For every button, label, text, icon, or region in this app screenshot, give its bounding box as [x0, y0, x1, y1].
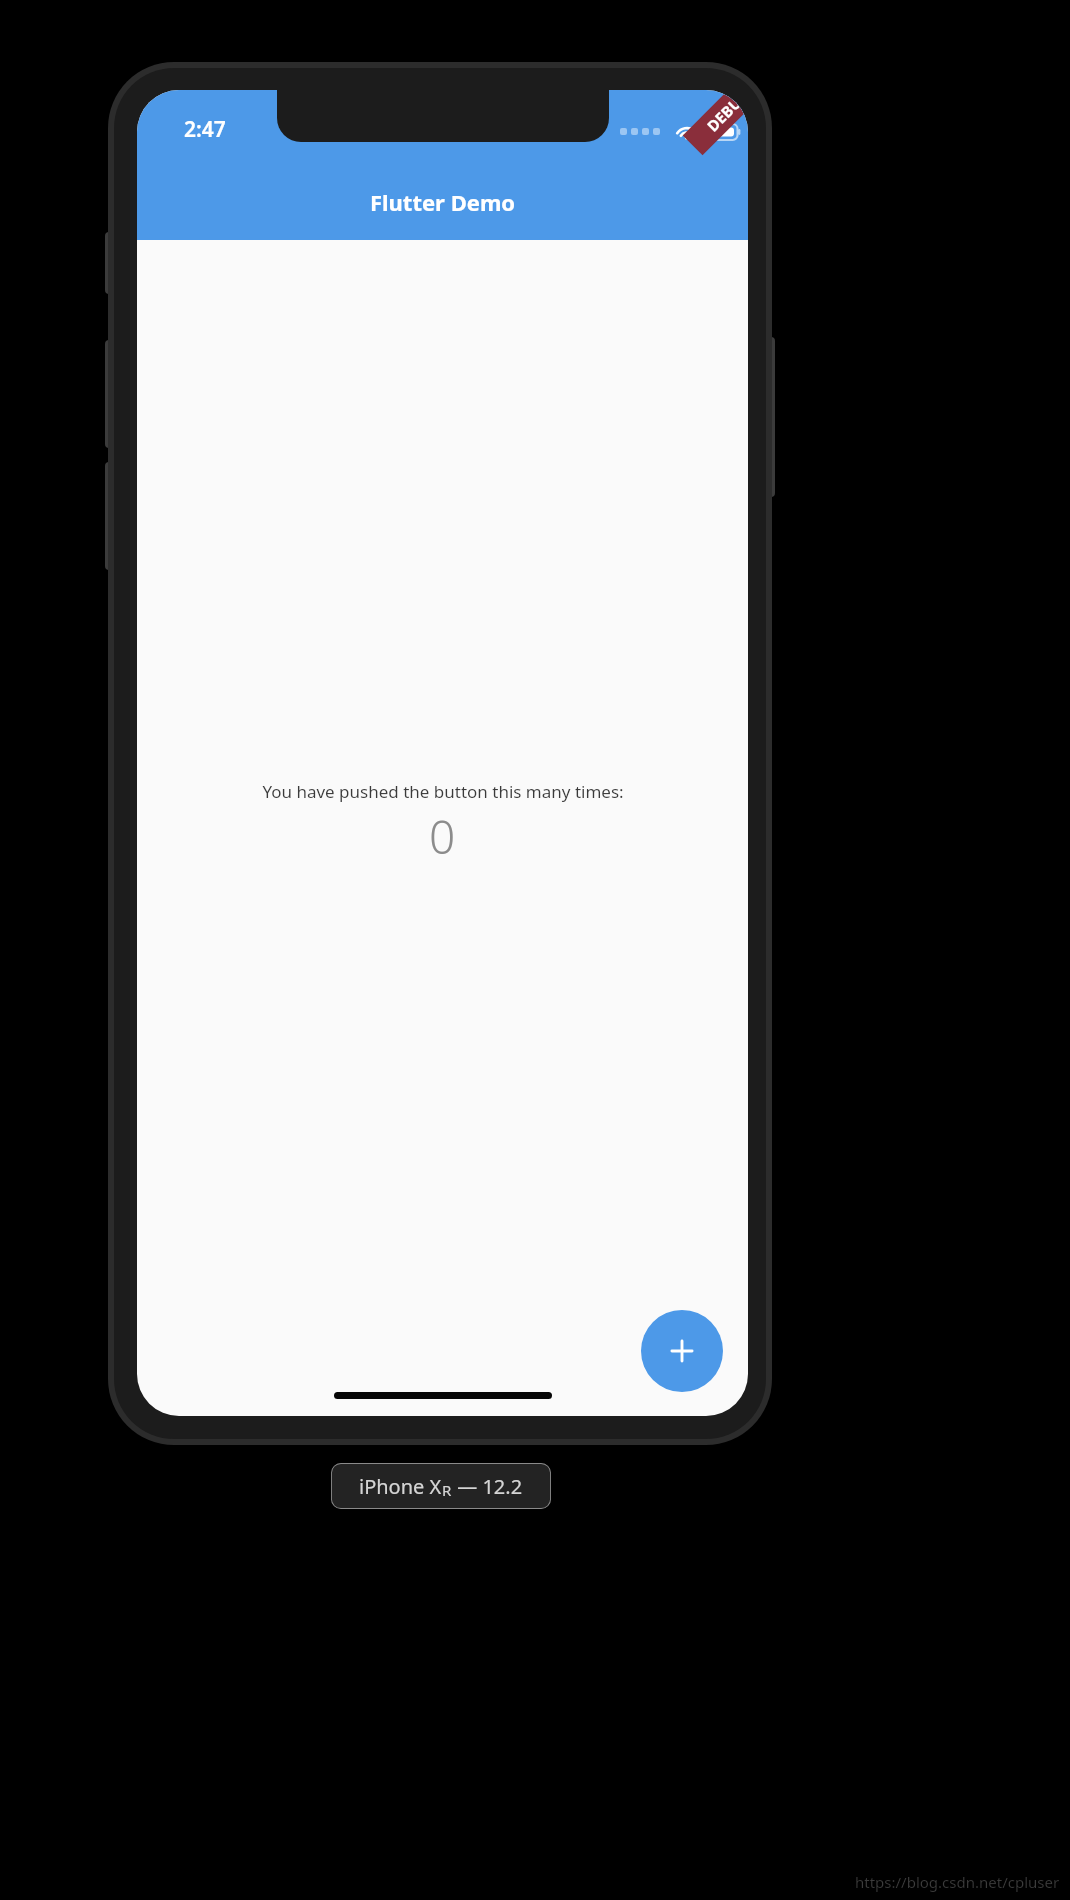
button[interactable]: Increment counter: [641, 1310, 723, 1392]
staticText: https://blog.csdn.net/cpluser: [855, 1872, 1060, 1892]
staticText: 2:47: [184, 115, 226, 144]
staticText: — 12.2: [452, 1473, 523, 1500]
staticText: iPhone X: [359, 1473, 442, 1500]
staticText: 0: [429, 805, 456, 868]
button[interactable]: iPhone X: [331, 1463, 551, 1509]
staticText: R: [442, 1480, 452, 1500]
staticText: DEBUG: [702, 90, 748, 135]
staticText: You have pushed the button this many tim…: [262, 780, 624, 803]
staticText: Flutter Demo: [137, 187, 748, 217]
